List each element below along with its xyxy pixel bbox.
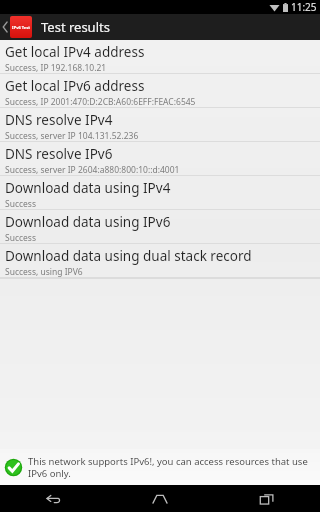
button[interactable]: Home (106, 485, 213, 512)
staticText: Success, IP 192.168.10.21 (5, 62, 107, 73)
staticText: Get local IPv4 address (5, 43, 145, 61)
button[interactable]: Download data using IPv6 (0, 210, 320, 244)
button[interactable]: Get local IPv4 address (0, 40, 320, 74)
staticText: Get local IPv6 address (5, 77, 145, 95)
staticText: Success (5, 232, 37, 243)
staticText: Success, server IP 2604:a880:800:10::d:4… (5, 164, 180, 175)
staticText: Download data using IPv6 (5, 213, 171, 231)
button[interactable]: Back (0, 485, 106, 512)
other: Success (4, 458, 23, 477)
staticText: IPv6 Test (12, 25, 30, 30)
staticText: Success, using IPV6 (5, 266, 83, 277)
button[interactable]: Get local IPv6 address (0, 74, 320, 108)
staticText: Success, IP 2001:470:D:2CB:A60:6EFF:FEAC… (5, 96, 196, 107)
button[interactable]: DNS resolve IPv6 (0, 142, 320, 176)
button[interactable]: Success (0, 449, 320, 485)
button[interactable]: DNS resolve IPv4 (0, 108, 320, 142)
staticText: Download data using IPv4 (5, 179, 171, 197)
staticText: 11:25 (291, 0, 317, 14)
other: Battery (283, 3, 288, 12)
button[interactable]: Recent apps (213, 485, 320, 512)
staticText: Test results (41, 18, 110, 36)
button[interactable]: Download data using dual stack record (0, 244, 320, 278)
staticText: DNS resolve IPv4 (5, 111, 113, 129)
staticText: This network supports IPv6!, you can acc… (28, 455, 316, 480)
other: Wi-Fi (269, 3, 280, 12)
staticText: Download data using dual stack record (5, 247, 252, 265)
staticText: Success, server IP 104.131.52.236 (5, 130, 139, 141)
button[interactable]: Navigate up (0, 14, 32, 40)
staticText: DNS resolve IPv6 (5, 145, 113, 163)
staticText: Success (5, 198, 37, 209)
button[interactable]: Download data using IPv4 (0, 176, 320, 210)
